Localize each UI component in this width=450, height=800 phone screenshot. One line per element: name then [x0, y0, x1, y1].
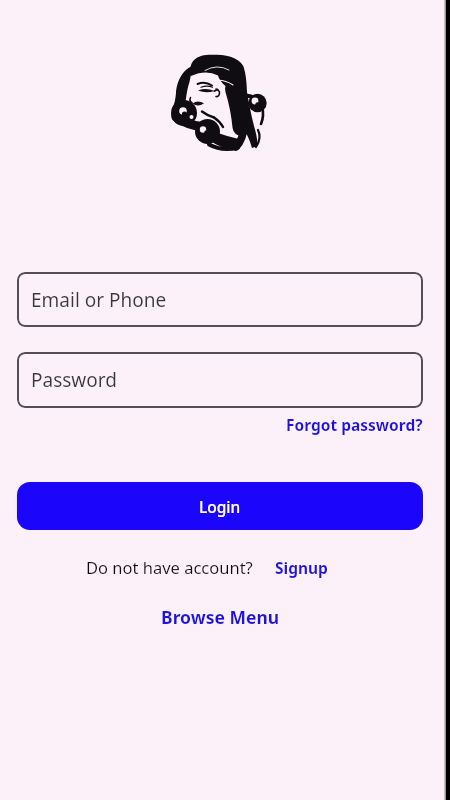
button[interactable]: Forgot password? [286, 414, 423, 435]
button[interactable]: Browse Menu [161, 605, 280, 629]
staticText: Login [199, 496, 241, 517]
staticText: Password [31, 367, 117, 393]
button[interactable]: Login [17, 482, 423, 530]
button[interactable]: Signup [275, 557, 328, 578]
button[interactable]: Email or Phone [17, 272, 423, 327]
button[interactable]: Password [17, 352, 423, 408]
staticText: Email or Phone [31, 287, 167, 313]
staticText: Do not have account? [86, 556, 253, 578]
